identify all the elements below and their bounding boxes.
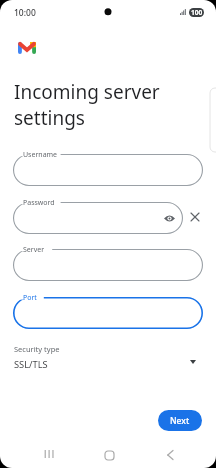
button[interactable]: Back bbox=[157, 442, 183, 468]
button[interactable]: Server bbox=[13, 249, 203, 281]
staticText: Next bbox=[170, 415, 190, 427]
staticText: Username bbox=[23, 150, 58, 160]
button[interactable]: Clear bbox=[187, 209, 203, 225]
staticText: Server bbox=[23, 245, 45, 255]
button[interactable]: Password bbox=[13, 202, 183, 234]
button[interactable]: Next bbox=[158, 410, 202, 431]
button[interactable]: Home bbox=[96, 442, 122, 468]
button[interactable]: Security type bbox=[0, 341, 216, 373]
staticText: Port bbox=[23, 293, 37, 303]
staticText: Password bbox=[23, 198, 55, 208]
staticText: Security type bbox=[14, 344, 60, 354]
staticText: SSL/TLS bbox=[14, 358, 48, 371]
button[interactable]: Username bbox=[13, 154, 203, 186]
button[interactable]: Port bbox=[13, 297, 203, 329]
button[interactable]: Show password bbox=[162, 211, 176, 225]
staticText: 10:00 bbox=[14, 7, 36, 19]
staticText: Incoming server settings bbox=[14, 79, 206, 130]
button[interactable]: Recents bbox=[35, 441, 61, 467]
staticText: 100 bbox=[191, 8, 203, 17]
